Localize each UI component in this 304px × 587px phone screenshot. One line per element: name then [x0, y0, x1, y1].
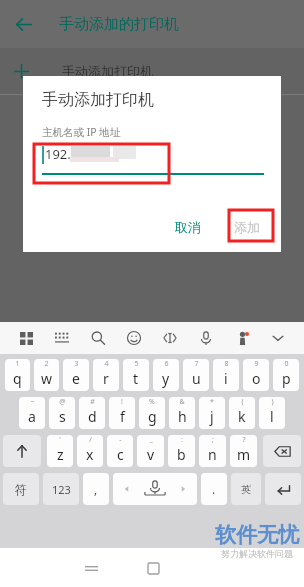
staticText: d	[88, 407, 97, 426]
staticText: 手动添加的打印机	[59, 15, 179, 34]
staticText: h	[178, 407, 187, 426]
staticText: :	[181, 435, 183, 445]
staticText: j	[210, 407, 214, 426]
staticText: ,	[94, 481, 98, 497]
staticText: b	[177, 445, 186, 464]
staticText: '	[59, 435, 61, 445]
button[interactable]: 5	[123, 359, 149, 391]
button[interactable]: @	[49, 397, 75, 429]
staticText: q	[13, 369, 22, 388]
button[interactable]: ,	[83, 473, 109, 505]
button[interactable]: &	[169, 397, 195, 429]
button[interactable]: (	[229, 397, 255, 429]
button[interactable]: 取消	[165, 213, 211, 241]
button[interactable]: 6	[153, 359, 179, 391]
staticText: f	[120, 407, 125, 426]
button[interactable]: 8	[213, 359, 239, 391]
button[interactable]: Space	[113, 473, 197, 505]
staticText: y	[162, 369, 170, 388]
button[interactable]: 192.	[42, 145, 264, 175]
staticText: k	[238, 407, 246, 426]
staticText: p	[282, 369, 291, 388]
staticText: 0	[284, 359, 289, 369]
button[interactable]: Home	[138, 553, 168, 583]
button[interactable]: '	[47, 435, 73, 467]
staticText: 努力解决软件问题	[221, 548, 293, 559]
button[interactable]: Symbols	[12, 324, 40, 352]
staticText: (	[241, 397, 244, 407]
staticText: z	[57, 445, 64, 464]
staticText: ?	[242, 435, 246, 445]
staticText: )	[271, 397, 274, 407]
staticText: 1	[15, 359, 20, 369]
staticText: -	[119, 435, 122, 445]
staticText: 6	[164, 359, 169, 369]
button[interactable]: %	[139, 397, 165, 429]
staticText: _	[149, 435, 153, 445]
staticText: 取消	[175, 219, 201, 235]
button[interactable]: Profile	[228, 324, 256, 352]
button[interactable]: 4	[93, 359, 119, 391]
staticText: a	[28, 407, 36, 426]
button[interactable]: .	[201, 473, 227, 505]
button[interactable]: Search	[84, 324, 112, 352]
button[interactable]: Backspace	[263, 435, 301, 467]
staticText: 英	[241, 483, 251, 496]
button[interactable]: ?	[230, 435, 257, 467]
button[interactable]: _	[137, 435, 164, 467]
staticText: i	[224, 369, 228, 388]
staticText: .	[212, 481, 216, 497]
button[interactable]: 9	[243, 359, 269, 391]
staticText: v	[147, 445, 155, 464]
staticText: g	[148, 407, 157, 426]
staticText: 9	[254, 359, 259, 369]
button[interactable]: -	[107, 435, 133, 467]
staticText: 手动添加打印机	[42, 90, 154, 110]
staticText: ;	[212, 435, 214, 445]
button[interactable]: Text editing	[156, 324, 184, 352]
staticText: x	[86, 445, 94, 464]
staticText: !	[121, 397, 123, 407]
button[interactable]: )	[259, 397, 285, 429]
button[interactable]: ~	[19, 397, 45, 429]
staticText: @	[59, 397, 66, 407]
button[interactable]: 3	[63, 359, 89, 391]
staticText: 5	[134, 359, 139, 369]
staticText: ~	[30, 397, 35, 407]
staticText: s	[59, 407, 66, 426]
button[interactable]: 2	[34, 359, 59, 391]
staticText: w	[41, 369, 53, 388]
button[interactable]: Enter	[265, 473, 301, 505]
button[interactable]: 7	[183, 359, 209, 391]
button[interactable]: *	[199, 397, 225, 429]
staticText: n	[208, 445, 217, 464]
staticText: m	[237, 445, 251, 464]
button[interactable]: 1	[5, 359, 30, 391]
button[interactable]: !	[109, 397, 135, 429]
button[interactable]: 123	[43, 473, 79, 505]
staticText: 添加	[234, 219, 260, 235]
button[interactable]: Voice input	[192, 324, 220, 352]
staticText: *	[210, 397, 214, 407]
button[interactable]: Emoji	[120, 324, 148, 352]
button[interactable]: Shift	[3, 435, 41, 467]
button[interactable]: 0	[273, 359, 299, 391]
staticText: 2	[44, 359, 49, 369]
staticText: 符	[15, 482, 27, 497]
button[interactable]: /	[77, 435, 103, 467]
staticText: #	[90, 397, 95, 407]
staticText: 3	[74, 359, 79, 369]
button[interactable]: #	[79, 397, 105, 429]
button[interactable]: 符	[3, 473, 39, 505]
button[interactable]: 英	[231, 473, 261, 505]
staticText: 7	[194, 359, 199, 369]
button[interactable]: 添加	[224, 213, 270, 241]
button[interactable]: Recents	[76, 553, 106, 583]
button[interactable]: :	[168, 435, 195, 467]
staticText: e	[72, 369, 80, 388]
button[interactable]: Back	[6, 7, 40, 41]
button[interactable]: Hide keyboard	[264, 324, 292, 352]
button[interactable]: Keyboard	[48, 324, 76, 352]
button[interactable]: ;	[199, 435, 226, 467]
staticText: 软件无忧	[215, 522, 299, 548]
